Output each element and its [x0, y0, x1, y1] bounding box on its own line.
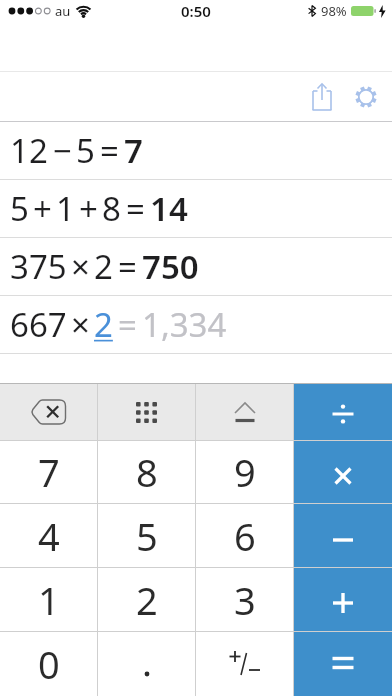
staticText: 0: [38, 638, 60, 690]
staticText: 375: [10, 244, 67, 289]
staticText: 14: [150, 186, 188, 231]
staticText: 750: [142, 244, 199, 289]
button[interactable]: 5: [98, 504, 195, 567]
staticText: =: [118, 302, 137, 347]
button[interactable]: [294, 384, 392, 440]
staticText: ×: [71, 302, 90, 347]
staticText: 5: [136, 510, 158, 562]
staticText: 2: [136, 574, 158, 626]
staticText: ×: [71, 244, 90, 289]
staticText: 2: [94, 302, 113, 347]
button[interactable]: 8: [98, 441, 195, 503]
staticText: 5: [76, 128, 95, 173]
staticText: 8: [102, 186, 121, 231]
staticText: −: [53, 128, 72, 173]
staticText: 6: [234, 510, 256, 562]
button[interactable]: 375: [0, 238, 392, 295]
staticText: =: [100, 128, 119, 173]
button[interactable]: 4: [0, 504, 97, 567]
staticText: 1: [56, 186, 75, 231]
staticText: 7: [38, 446, 60, 498]
button[interactable]: [196, 632, 293, 696]
staticText: +: [33, 186, 52, 231]
button[interactable]: [294, 568, 392, 631]
button[interactable]: [294, 632, 392, 696]
staticText: 3: [234, 574, 256, 626]
button[interactable]: [0, 384, 97, 440]
staticText: 5: [10, 186, 29, 231]
staticText: 1: [38, 574, 60, 626]
staticText: 7: [124, 128, 143, 173]
button[interactable]: [98, 632, 195, 696]
staticText: 98%: [321, 2, 347, 20]
staticText: 8: [136, 446, 158, 498]
button[interactable]: [312, 83, 332, 111]
staticText: 0:50: [181, 1, 211, 21]
staticText: 12: [10, 128, 48, 173]
button[interactable]: 6: [196, 504, 293, 567]
button[interactable]: [294, 504, 392, 567]
button[interactable]: 9: [196, 441, 293, 503]
staticText: 2: [94, 244, 113, 289]
staticText: =: [118, 244, 137, 289]
staticText: 667: [10, 302, 67, 347]
staticText: 9: [234, 446, 256, 498]
button[interactable]: [354, 85, 378, 109]
button[interactable]: 5: [0, 180, 392, 237]
staticText: 1,334: [142, 302, 227, 347]
staticText: 4: [38, 510, 60, 562]
button[interactable]: 2: [98, 568, 195, 631]
button[interactable]: 1: [0, 568, 97, 631]
button[interactable]: 7: [0, 441, 97, 503]
staticText: +: [79, 186, 98, 231]
button[interactable]: 667: [0, 296, 392, 353]
button[interactable]: 3: [196, 568, 293, 631]
staticText: =: [126, 186, 145, 231]
button[interactable]: 0: [0, 632, 97, 696]
button[interactable]: 12: [0, 122, 392, 179]
button[interactable]: [196, 384, 293, 440]
button[interactable]: [294, 441, 392, 503]
button[interactable]: [98, 384, 195, 440]
staticText: au: [55, 2, 71, 20]
